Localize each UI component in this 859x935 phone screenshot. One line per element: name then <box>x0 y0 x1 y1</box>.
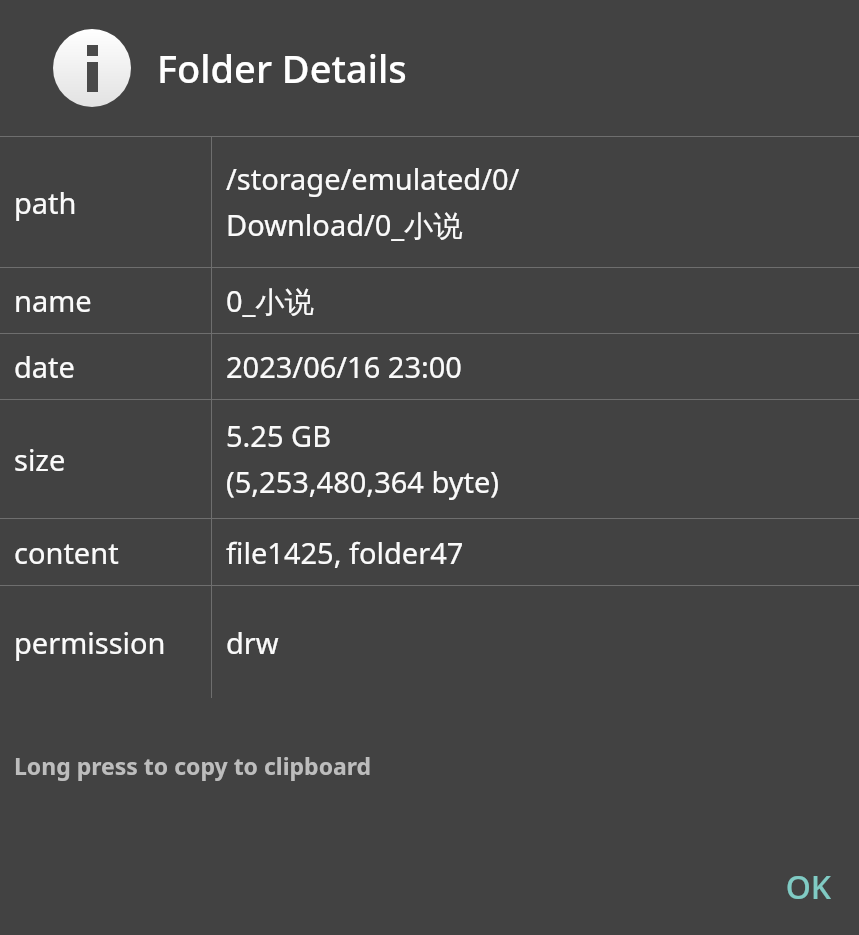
staticText: date <box>14 347 75 386</box>
staticText: permission <box>14 623 166 662</box>
button[interactable]: content <box>0 519 859 585</box>
button[interactable]: permission <box>0 586 859 698</box>
button[interactable]: name <box>0 268 859 333</box>
staticText: name <box>14 281 92 320</box>
staticText: 0_小说 <box>226 281 314 321</box>
staticText: Folder Details <box>157 42 407 94</box>
staticText: 2023/06/16 23:00 <box>226 347 462 386</box>
button[interactable]: OK <box>757 851 859 923</box>
staticText: OK <box>785 865 831 909</box>
staticText: file1425, folder47 <box>226 533 464 572</box>
staticText: /storage/emulated/0/ Download/0_小说 <box>226 159 520 245</box>
button[interactable]: date <box>0 334 859 399</box>
button[interactable]: size <box>0 400 859 518</box>
staticText: size <box>14 440 66 479</box>
button[interactable]: path <box>0 137 859 267</box>
staticText: content <box>14 533 119 572</box>
staticText: path <box>14 183 77 222</box>
staticText: drw <box>226 623 279 662</box>
staticText: Long press to copy to clipboard <box>14 750 372 781</box>
staticText: 5.25 GB (5,253,480,364 byte) <box>226 416 500 502</box>
